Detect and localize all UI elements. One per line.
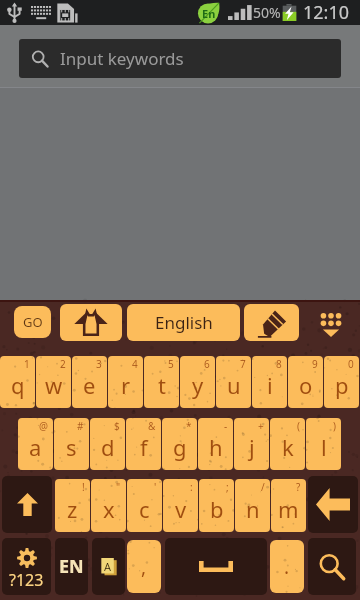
staticText: e — [83, 370, 96, 400]
staticText: w — [45, 370, 63, 400]
staticText: & — [148, 419, 156, 433]
staticText: d — [101, 432, 115, 462]
staticText: $ — [114, 419, 120, 433]
button[interactable]: Theme — [60, 304, 122, 341]
staticText: 7 — [240, 357, 246, 371]
button[interactable]: * — [162, 418, 197, 470]
button[interactable]: # — [54, 418, 89, 470]
staticText: 12:10 — [303, 0, 350, 25]
staticText: 50% — [253, 3, 281, 22]
button[interactable]: " — [91, 479, 126, 532]
button[interactable]: Backspace — [308, 476, 358, 533]
button[interactable]: 3 — [72, 356, 107, 408]
button[interactable]: 4 — [108, 356, 143, 408]
staticText: - — [224, 419, 228, 433]
staticText: g — [173, 432, 187, 462]
staticText: English — [155, 311, 213, 334]
button[interactable]: Space — [165, 538, 267, 595]
button[interactable]: : — [163, 479, 198, 532]
staticText: n — [246, 494, 260, 524]
button[interactable]: ( — [270, 418, 305, 470]
button[interactable]: Dictionary — [92, 538, 125, 595]
staticText: + — [258, 419, 264, 433]
button[interactable]: More options — [305, 304, 356, 341]
button[interactable]: 0 — [324, 356, 359, 408]
staticText: y — [192, 370, 204, 400]
staticText: 4 — [132, 357, 138, 371]
staticText: , — [141, 554, 147, 580]
button[interactable]: , — [127, 540, 161, 593]
staticText: p — [335, 370, 349, 400]
button[interactable]: 2 — [36, 356, 71, 408]
button[interactable]: Shift — [2, 476, 52, 533]
staticText: 5 — [168, 357, 174, 371]
staticText: h — [209, 432, 223, 462]
staticText: 2 — [60, 357, 66, 371]
staticText: x — [103, 494, 115, 524]
button[interactable]: ! — [55, 479, 90, 532]
staticText: o — [299, 370, 313, 400]
button[interactable]: Edit — [244, 304, 299, 341]
button[interactable]: English — [127, 304, 240, 341]
staticText: c — [139, 494, 150, 524]
staticText: ! — [82, 480, 85, 494]
staticText: b — [210, 494, 224, 524]
staticText: r — [121, 370, 131, 400]
staticText: : — [190, 480, 193, 494]
button[interactable]: ) — [306, 418, 341, 470]
button[interactable]: @ — [18, 418, 53, 470]
button[interactable]: $ — [90, 418, 125, 470]
button[interactable]: 7 — [216, 356, 251, 408]
staticText: 6 — [204, 357, 210, 371]
staticText: i — [267, 370, 273, 400]
staticText: u — [227, 370, 241, 400]
button[interactable]: . — [270, 540, 304, 593]
staticText: ' — [154, 480, 157, 494]
staticText: m — [278, 494, 299, 524]
staticText: GO — [23, 313, 43, 331]
button[interactable]: Change language — [55, 538, 88, 595]
staticText: EN — [59, 554, 84, 579]
button[interactable]: Input keywords — [19, 39, 341, 78]
staticText: / — [261, 480, 265, 494]
button[interactable]: / — [235, 479, 270, 532]
staticText: ( — [297, 419, 300, 433]
staticText: En — [202, 6, 216, 21]
staticText: q — [11, 370, 25, 400]
staticText: t — [158, 370, 166, 400]
staticText: 1 — [24, 357, 30, 371]
button[interactable]: 8 — [252, 356, 287, 408]
button[interactable]: + — [234, 418, 269, 470]
button[interactable]: 1 — [0, 356, 35, 408]
staticText: f — [140, 432, 148, 462]
button[interactable]: ? — [271, 479, 306, 532]
button[interactable]: ; — [199, 479, 234, 532]
staticText: * — [186, 419, 192, 433]
staticText: l — [321, 432, 327, 462]
button[interactable]: - — [198, 418, 233, 470]
staticText: . — [284, 554, 290, 580]
staticText: Input keywords — [60, 47, 184, 70]
button[interactable]: 5 — [144, 356, 179, 408]
staticText: A — [104, 559, 112, 574]
staticText: " — [116, 480, 121, 494]
staticText: v — [175, 494, 187, 524]
button[interactable]: ' — [127, 479, 162, 532]
button[interactable]: Symbols and settings — [2, 538, 51, 595]
staticText: # — [77, 419, 84, 433]
staticText: 0 — [348, 357, 354, 371]
staticText: ? — [296, 480, 301, 494]
staticText: 3 — [96, 357, 102, 371]
button[interactable]: 6 — [180, 356, 215, 408]
staticText: j — [249, 432, 255, 462]
button[interactable]: Search — [308, 538, 356, 595]
button[interactable]: 9 — [288, 356, 323, 408]
staticText: ) — [333, 419, 336, 433]
staticText: z — [67, 494, 78, 524]
staticText: 9 — [312, 357, 318, 371]
staticText: a — [29, 432, 42, 462]
staticText: s — [66, 432, 77, 462]
staticText: 8 — [276, 357, 282, 371]
button[interactable]: GO — [14, 306, 51, 338]
button[interactable]: & — [126, 418, 161, 470]
